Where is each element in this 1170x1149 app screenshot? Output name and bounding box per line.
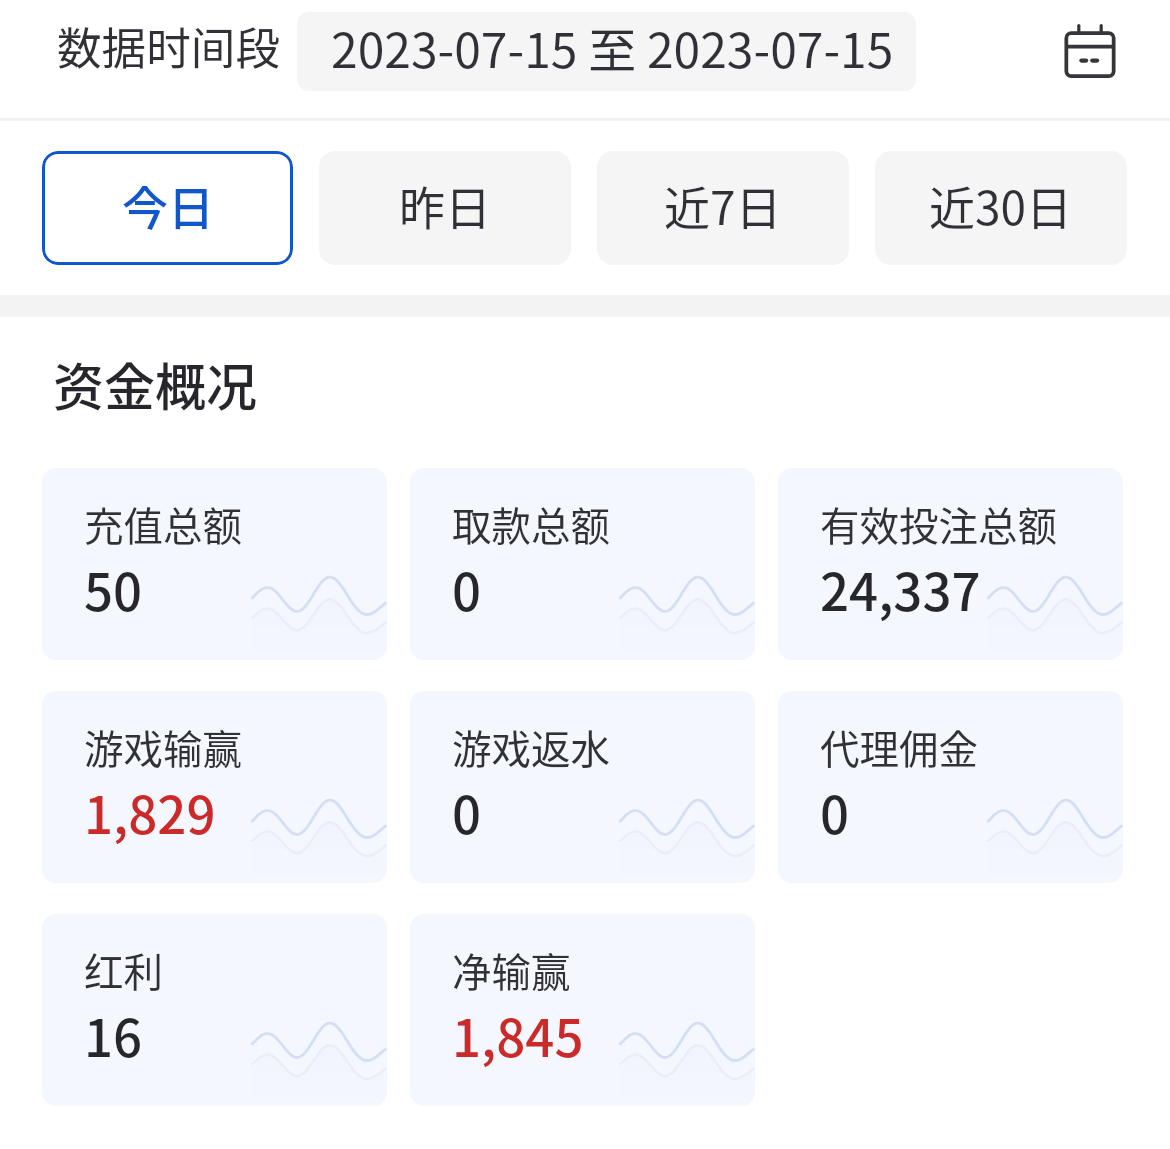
staticText: 资金概况 <box>53 347 258 421</box>
staticText: 1,829 <box>84 775 216 849</box>
staticText: 昨日 <box>399 172 491 239</box>
button[interactable]: 游戏输赢 <box>42 691 387 883</box>
staticText: 红利 <box>84 941 163 998</box>
staticText: 近30日 <box>929 172 1073 239</box>
staticText: 净输赢 <box>452 941 571 998</box>
button[interactable]: Select date range <box>1042 3 1138 99</box>
staticText: 充值总额 <box>84 495 242 552</box>
staticText: 近7日 <box>664 172 782 239</box>
staticText: 数据时间段 <box>57 13 280 78</box>
button[interactable]: 昨日 <box>319 151 571 265</box>
staticText: 50 <box>84 552 143 626</box>
button[interactable]: 今日 <box>42 151 293 265</box>
staticText: 2023-07-15 至 2023-07-15 <box>331 12 894 82</box>
staticText: 0 <box>820 775 850 849</box>
button[interactable]: 红利 <box>42 914 387 1106</box>
staticText: 0 <box>452 552 482 626</box>
staticText: 游戏输赢 <box>84 718 242 775</box>
staticText: 0 <box>452 775 482 849</box>
button[interactable]: 有效投注总额 <box>778 468 1123 660</box>
staticText: 1,845 <box>452 998 584 1072</box>
button[interactable]: 游戏返水 <box>410 691 755 883</box>
button[interactable]: 净输赢 <box>410 914 755 1106</box>
button[interactable]: 取款总额 <box>410 468 755 660</box>
button[interactable]: 近7日 <box>597 151 849 265</box>
button[interactable]: 2023-07-15 至 2023-07-15 <box>297 12 916 91</box>
button[interactable]: 代理佣金 <box>778 691 1123 883</box>
staticText: 代理佣金 <box>820 718 978 775</box>
button[interactable]: 近30日 <box>875 151 1127 265</box>
staticText: 取款总额 <box>452 495 610 552</box>
staticText: 有效投注总额 <box>820 495 1057 552</box>
staticText: 今日 <box>122 172 214 239</box>
button[interactable]: 充值总额 <box>42 468 387 660</box>
staticText: 游戏返水 <box>452 718 610 775</box>
staticText: 16 <box>84 998 143 1072</box>
staticText: 24,337 <box>820 552 981 626</box>
